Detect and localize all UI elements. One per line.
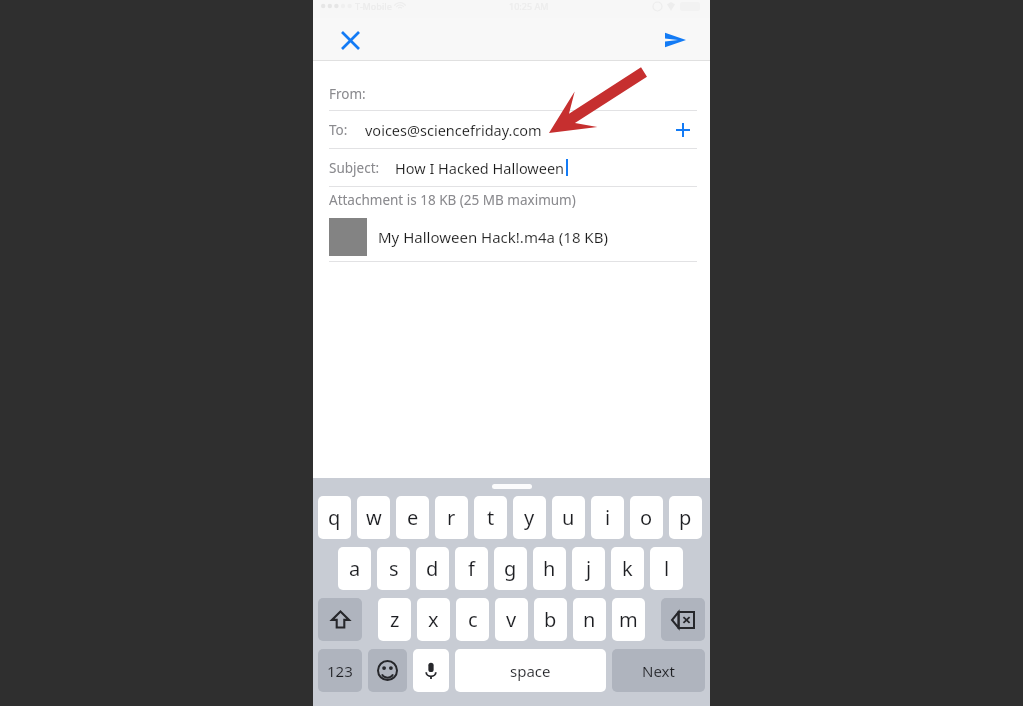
button[interactable]: a <box>338 547 371 590</box>
button[interactable]: 123 <box>318 649 362 692</box>
staticText: x <box>428 606 439 633</box>
staticText: g <box>504 555 517 582</box>
button[interactable]: Emoji <box>368 649 407 692</box>
button[interactable]: Send <box>657 22 693 58</box>
button[interactable]: h <box>533 547 566 590</box>
button[interactable]: Backspace <box>661 598 705 641</box>
button[interactable]: l <box>650 547 683 590</box>
staticText: i <box>605 504 611 531</box>
button[interactable]: space <box>455 649 606 692</box>
staticText: s <box>389 555 399 582</box>
button[interactable]: b <box>534 598 567 641</box>
button[interactable]: u <box>552 496 585 539</box>
staticText: f <box>468 555 475 582</box>
button[interactable]: s <box>377 547 410 590</box>
staticText: space <box>510 661 551 681</box>
button[interactable]: Add recipient <box>669 116 697 144</box>
button[interactable]: n <box>573 598 606 641</box>
button[interactable]: q <box>318 496 351 539</box>
staticText: My Halloween Hack!.m4a (18 KB) <box>378 227 608 247</box>
staticText: b <box>544 606 557 633</box>
button[interactable]: To: <box>313 111 710 148</box>
staticText: l <box>664 555 670 582</box>
staticText: To: <box>329 121 348 139</box>
button[interactable]: k <box>611 547 644 590</box>
staticText: e <box>407 504 419 531</box>
button[interactable]: Next <box>612 649 705 692</box>
button[interactable]: y <box>513 496 546 539</box>
button[interactable]: w <box>357 496 390 539</box>
button[interactable]: i <box>591 496 624 539</box>
button[interactable]: My Halloween Hack!.m4a (18 KB) <box>313 213 710 261</box>
staticText: 123 <box>327 661 353 681</box>
staticText: q <box>328 504 341 531</box>
staticText: n <box>583 606 596 633</box>
staticText: k <box>622 555 633 582</box>
staticText: p <box>679 504 692 531</box>
staticText: r <box>447 504 456 531</box>
staticText: voices@sciencefriday.com <box>365 120 542 140</box>
staticText: w <box>366 504 382 531</box>
button[interactable]: Close <box>333 23 367 57</box>
button[interactable]: x <box>417 598 450 641</box>
staticText: z <box>390 606 400 633</box>
staticText: Attachment is 18 KB (25 MB maximum) <box>329 191 576 209</box>
button[interactable]: t <box>474 496 507 539</box>
staticText: v <box>506 606 517 633</box>
button[interactable]: r <box>435 496 468 539</box>
button[interactable]: p <box>669 496 702 539</box>
staticText: T-Mobile <box>355 0 392 12</box>
button[interactable]: o <box>630 496 663 539</box>
button[interactable]: Dictation <box>413 649 449 692</box>
staticText: o <box>640 504 653 531</box>
button[interactable]: Subject: <box>313 149 710 186</box>
staticText: m <box>619 606 638 633</box>
staticText: c <box>468 606 478 633</box>
button[interactable]: c <box>456 598 489 641</box>
button[interactable]: g <box>494 547 527 590</box>
staticText: j <box>586 555 592 582</box>
staticText: d <box>426 555 439 582</box>
staticText: a <box>349 555 361 582</box>
staticText: u <box>562 504 575 531</box>
staticText: From: <box>329 85 366 103</box>
button[interactable]: j <box>572 547 605 590</box>
button[interactable]: From: <box>313 78 710 110</box>
staticText: Subject: <box>329 159 380 177</box>
button[interactable]: v <box>495 598 528 641</box>
staticText: Next <box>642 661 675 681</box>
staticText: 10:25 AM <box>509 0 549 12</box>
button[interactable]: e <box>396 496 429 539</box>
staticText: y <box>524 504 535 531</box>
staticText: h <box>543 555 556 582</box>
staticText: t <box>487 504 495 531</box>
staticText: How I Hacked Halloween <box>395 158 565 178</box>
button[interactable]: m <box>612 598 645 641</box>
button[interactable]: f <box>455 547 488 590</box>
button[interactable]: z <box>378 598 411 641</box>
button[interactable]: d <box>416 547 449 590</box>
button[interactable]: Shift <box>318 598 362 641</box>
